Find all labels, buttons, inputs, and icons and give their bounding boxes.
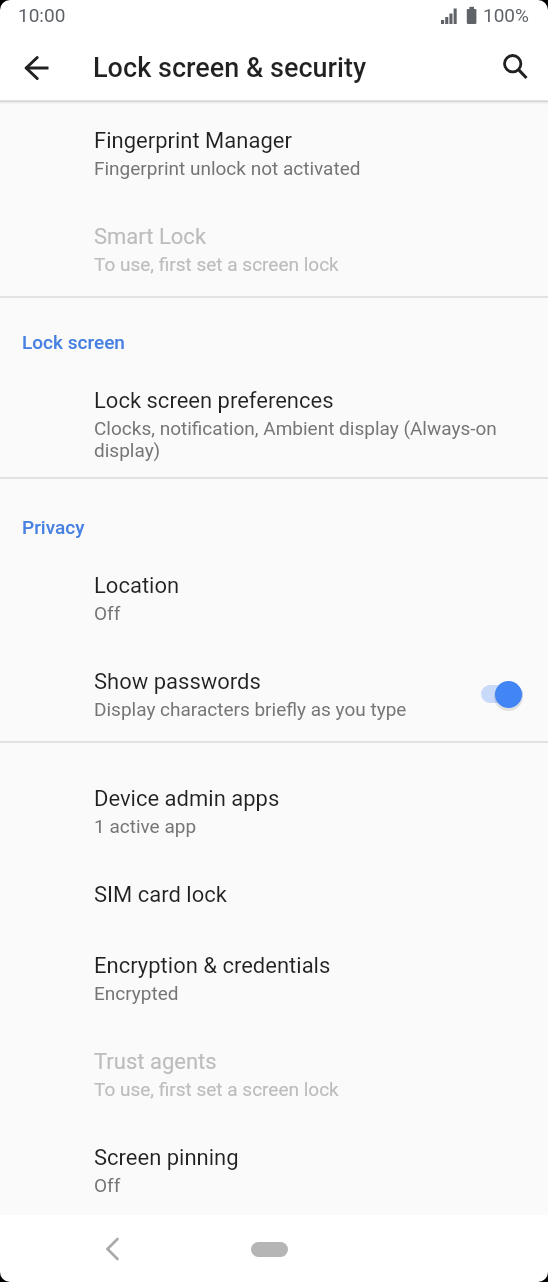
button[interactable] (13, 44, 61, 92)
staticText: Fingerprint Manager (94, 128, 292, 154)
button[interactable] (0, 558, 548, 642)
button[interactable] (495, 681, 522, 708)
staticText: To use, first set a screen lock (94, 1078, 339, 1100)
button[interactable] (0, 1034, 548, 1118)
staticText: Show passwords (94, 669, 261, 695)
staticText: Lock screen (22, 331, 125, 353)
staticText: Clocks, notification, Ambient display (A… (94, 417, 497, 439)
staticText: Location (94, 573, 180, 599)
staticText: SIM card lock (94, 882, 227, 908)
staticText: 1 active app (94, 815, 197, 837)
button[interactable] (492, 44, 540, 92)
button[interactable] (0, 938, 548, 1022)
button[interactable] (0, 654, 548, 738)
staticText: Encryption & credentials (94, 953, 331, 979)
staticText: Screen pinning (94, 1145, 239, 1171)
staticText: Smart Lock (94, 224, 207, 250)
staticText: Fingerprint unlock not activated (94, 157, 361, 179)
staticText: Off (94, 602, 121, 624)
staticText: 10:00 (18, 4, 66, 26)
button[interactable] (89, 1225, 137, 1273)
staticText: Off (94, 1174, 121, 1196)
staticText: Lock screen & security (93, 52, 367, 84)
button[interactable] (0, 208, 548, 292)
button[interactable] (0, 764, 548, 848)
staticText: Device admin apps (94, 786, 280, 812)
button[interactable] (0, 1130, 548, 1214)
staticText: Lock screen preferences (94, 388, 334, 414)
button[interactable] (0, 372, 548, 470)
staticText: Display characters briefly as you type (94, 698, 407, 720)
staticText: Privacy (22, 516, 85, 538)
button[interactable] (0, 112, 548, 196)
staticText: To use, first set a screen lock (94, 253, 339, 275)
staticText: 100% (483, 4, 529, 26)
staticText: Encrypted (94, 982, 179, 1004)
button[interactable] (251, 1242, 288, 1257)
button[interactable] (0, 860, 548, 930)
staticText: Trust agents (94, 1049, 217, 1075)
staticText: display) (94, 439, 161, 461)
